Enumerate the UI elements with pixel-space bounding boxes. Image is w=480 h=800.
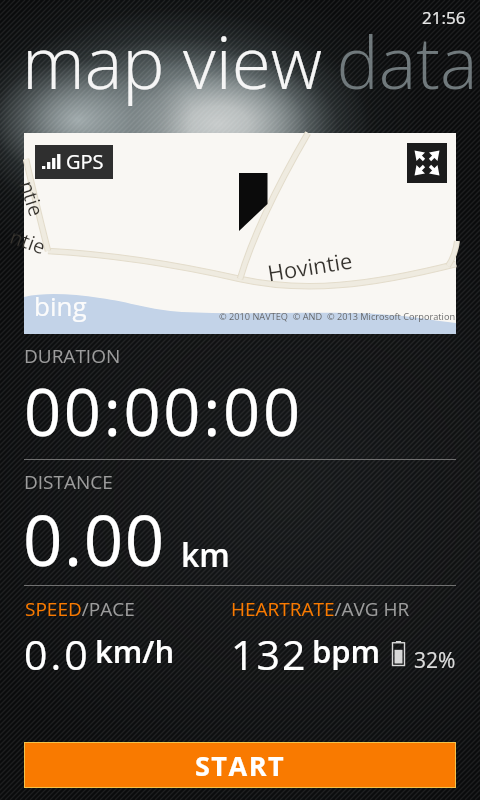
staticText: map view data [22, 13, 478, 110]
staticText: DURATION [24, 343, 121, 369]
staticText: km/h [95, 630, 175, 672]
staticText: 21:56 [422, 6, 466, 29]
staticText: km [181, 533, 230, 577]
staticText: © 2010 NAVTEQ © AND © 2013 Microsoft Cor… [219, 310, 456, 323]
staticText: 132 [231, 626, 308, 682]
button[interactable]: Hovintie [24, 133, 456, 334]
staticText: START [195, 747, 286, 784]
staticText: bing [34, 288, 87, 323]
staticText: HEARTRATE/AVG HR [231, 596, 410, 622]
staticText: 32% [414, 646, 456, 675]
staticText: GPS [66, 148, 104, 175]
staticText: ntie [14, 177, 50, 220]
staticText: ntie [6, 223, 50, 260]
button[interactable]: Expand map to full screen [407, 143, 447, 183]
staticText: Hovintie [265, 244, 355, 288]
staticText: bpm [312, 630, 381, 672]
staticText: 00:00:00 [24, 367, 303, 456]
staticText: 0.00 [23, 492, 166, 586]
staticText: SPEED/PACE [25, 596, 135, 622]
staticText: DISTANCE [24, 469, 113, 495]
staticText: 0.0 [24, 626, 91, 682]
button[interactable]: START [24, 742, 456, 788]
